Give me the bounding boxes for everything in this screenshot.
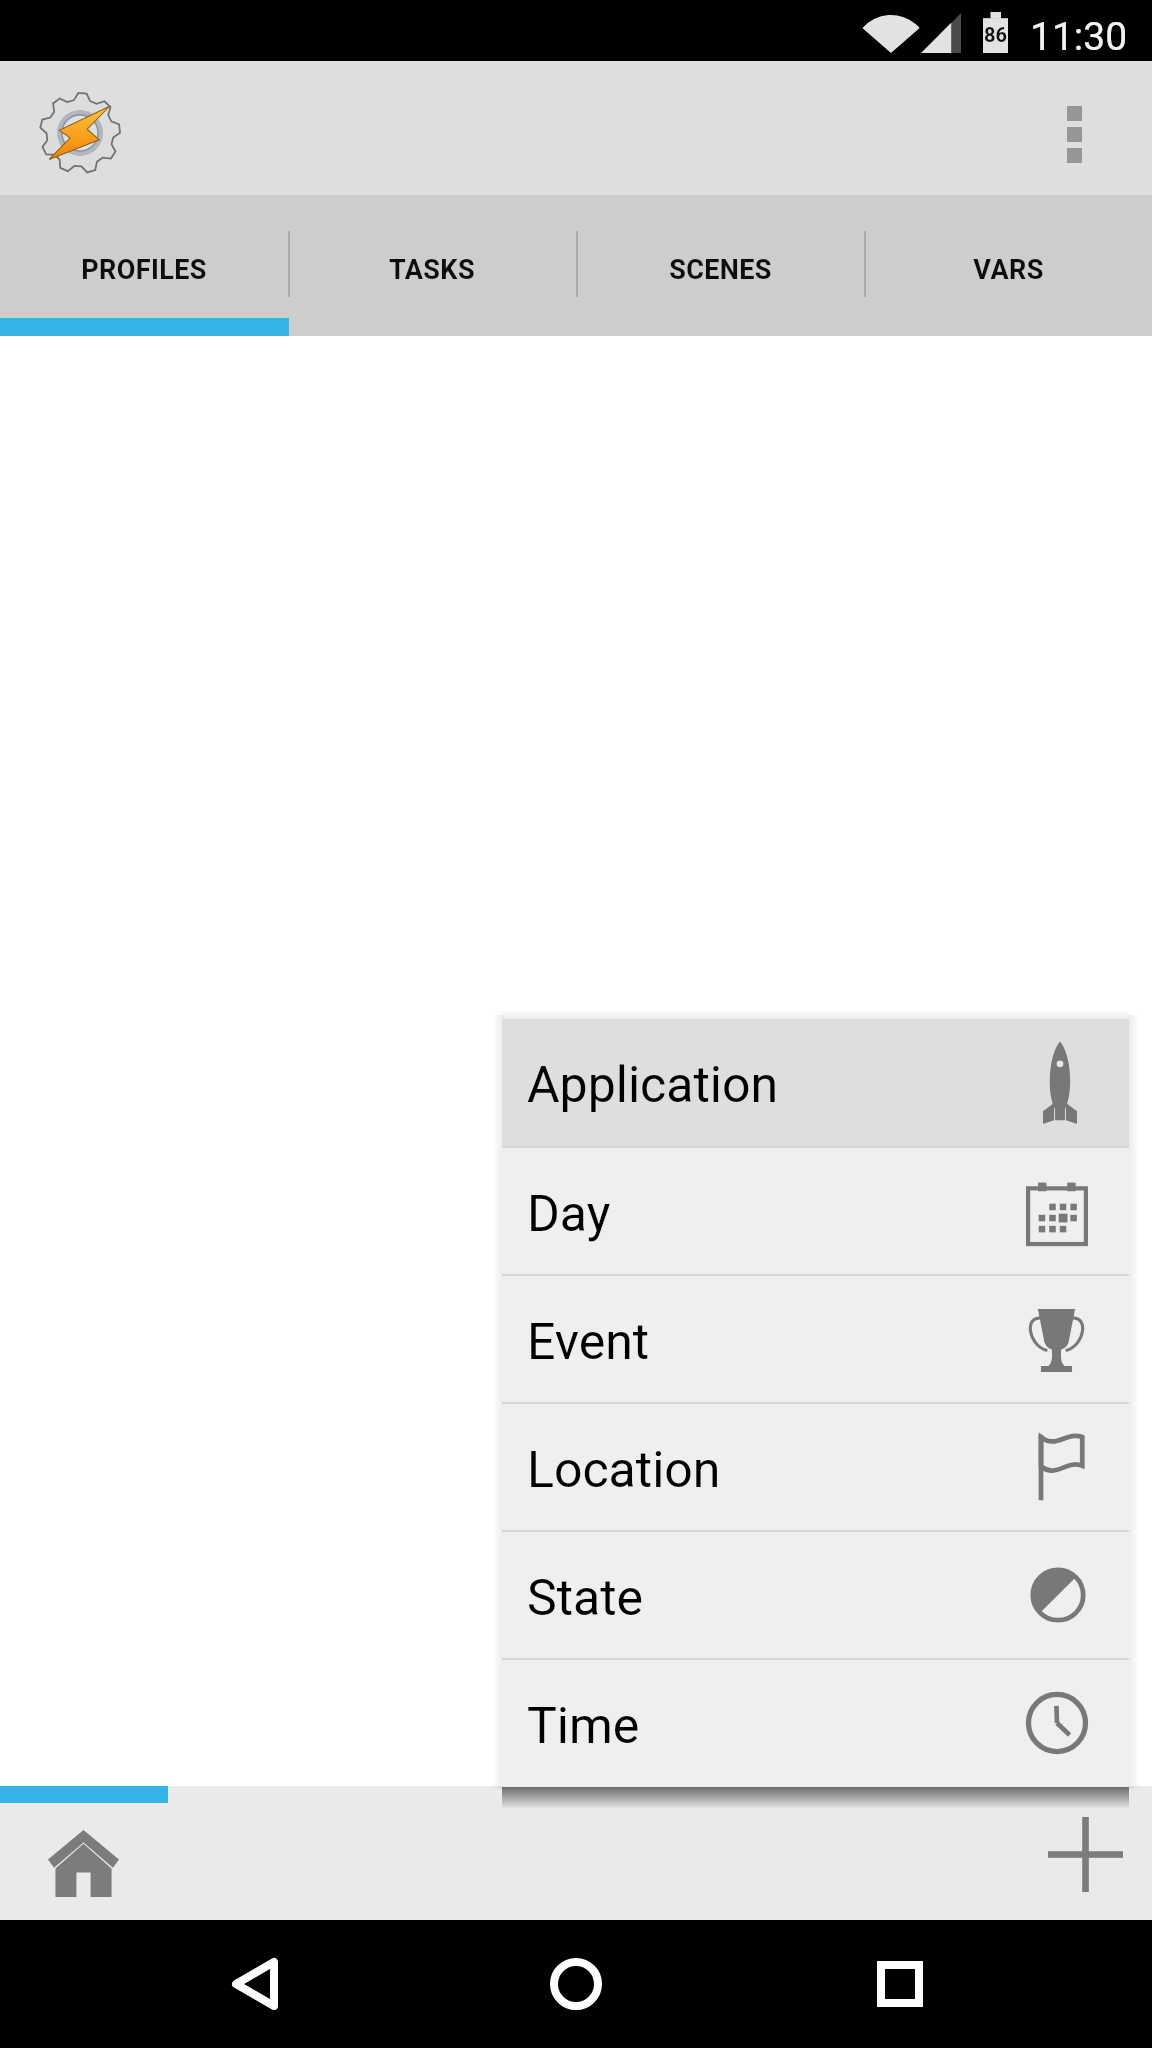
button[interactable]: Tasker home — [36, 89, 124, 177]
staticText: Application — [527, 1056, 779, 1115]
staticText: Event — [527, 1313, 650, 1372]
staticText: Day — [527, 1185, 611, 1244]
staticText: TASKS — [389, 254, 475, 286]
button[interactable]: Home — [14, 1811, 154, 1911]
staticText: State — [527, 1569, 644, 1628]
button[interactable]: Location — [502, 1404, 1129, 1530]
button[interactable]: Day — [502, 1148, 1129, 1274]
button[interactable]: Event — [502, 1276, 1129, 1402]
button[interactable]: TASKS — [288, 195, 576, 318]
button[interactable]: More options — [1034, 82, 1116, 178]
staticText: Location — [527, 1441, 721, 1500]
staticText: 86 — [984, 23, 1007, 46]
button[interactable]: State — [502, 1532, 1129, 1658]
button[interactable]: SCENES — [576, 195, 864, 318]
button[interactable]: Time — [502, 1660, 1129, 1786]
staticText: 11:30 — [1030, 14, 1128, 60]
staticText: VARS — [973, 254, 1044, 286]
staticText: SCENES — [669, 254, 772, 286]
button[interactable]: PROFILES — [0, 195, 288, 318]
staticText: Time — [527, 1697, 640, 1756]
button[interactable]: Back — [205, 1934, 305, 2034]
staticText: PROFILES — [81, 254, 207, 286]
button[interactable]: Home — [526, 1934, 626, 2034]
button[interactable]: Application — [502, 1019, 1129, 1146]
button[interactable]: Recent apps — [850, 1934, 950, 2034]
button[interactable]: VARS — [864, 195, 1152, 318]
button[interactable]: Add new profile — [1019, 1803, 1152, 1909]
